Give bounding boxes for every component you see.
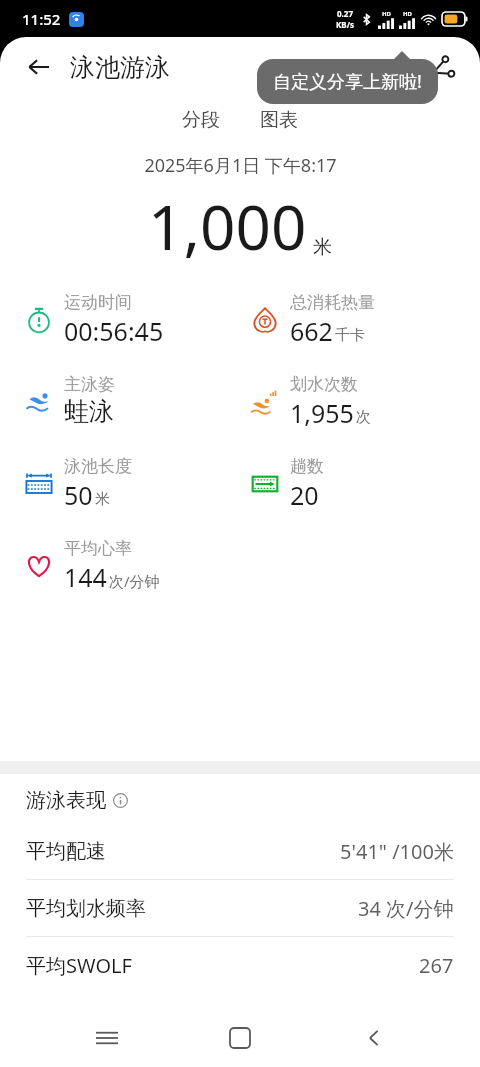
button[interactable]: 平均配速	[0, 823, 480, 879]
button[interactable]: 分段	[170, 104, 232, 136]
button[interactable]: 图表	[248, 104, 310, 136]
button[interactable]: 平均SWOLF	[0, 937, 480, 993]
staticText: 0.27	[337, 8, 353, 19]
button[interactable]: 平均划水频率	[0, 880, 480, 936]
staticText: 米	[95, 490, 110, 509]
staticText: 泳池长度	[64, 456, 132, 477]
staticText: 蛙泳	[64, 396, 114, 427]
button[interactable]: Recent apps	[80, 1011, 134, 1065]
button[interactable]: 泳池长度	[0, 454, 240, 514]
button[interactable]: Back	[347, 1011, 401, 1065]
staticText: 自定义分享上新啦!	[273, 69, 422, 94]
button[interactable]: 自定义分享上新啦!	[257, 59, 438, 104]
staticText: 次/分钟	[109, 571, 160, 591]
staticText: 662	[290, 314, 333, 348]
staticText: 划水次数	[290, 374, 358, 395]
staticText: 游泳表现	[26, 788, 106, 813]
staticText: 平均心率	[64, 538, 132, 559]
staticText: 20	[290, 478, 319, 512]
staticText: 平均划水频率	[26, 896, 146, 921]
staticText: 图表	[260, 108, 298, 132]
staticText: 总消耗热量	[290, 292, 375, 313]
staticText: 11:52	[22, 9, 61, 29]
button[interactable]: 划水次数	[240, 372, 480, 432]
staticText: 平均配速	[26, 839, 106, 864]
staticText: 267	[419, 952, 454, 979]
staticText: 144	[64, 560, 107, 594]
staticText: 34 次/分钟	[358, 895, 454, 922]
staticText: 50	[64, 478, 93, 512]
staticText: 2025年6月1日 下午8:17	[144, 153, 337, 178]
button[interactable]: Back	[18, 46, 60, 88]
button[interactable]: 主泳姿	[0, 372, 240, 429]
staticText: 千卡	[335, 326, 365, 345]
staticText: 次	[356, 408, 371, 427]
button[interactable]: 趟数	[240, 454, 480, 514]
staticText: KB/s	[336, 19, 354, 30]
staticText: 1,000	[148, 184, 307, 268]
button[interactable]: 平均心率	[0, 536, 240, 596]
button[interactable]: 总消耗热量	[240, 290, 480, 350]
button[interactable]: Share	[420, 45, 464, 89]
staticText: 米	[313, 235, 332, 259]
staticText: 运动时间	[64, 292, 132, 313]
staticText: HD	[403, 10, 412, 18]
staticText: 泳池游泳	[70, 52, 170, 83]
staticText: 主泳姿	[64, 374, 115, 395]
staticText: 1,955	[290, 396, 354, 430]
staticText: HD	[382, 10, 391, 18]
button[interactable]: Home	[213, 1011, 267, 1065]
staticText: 分段	[182, 108, 220, 132]
staticText: 00:56:45	[64, 314, 164, 348]
button[interactable]: 游泳表现	[0, 774, 480, 823]
button[interactable]: 运动时间	[0, 290, 240, 350]
staticText: 趟数	[290, 456, 324, 477]
staticText: 平均SWOLF	[26, 952, 132, 979]
staticText: 5'41" /100米	[340, 838, 454, 865]
